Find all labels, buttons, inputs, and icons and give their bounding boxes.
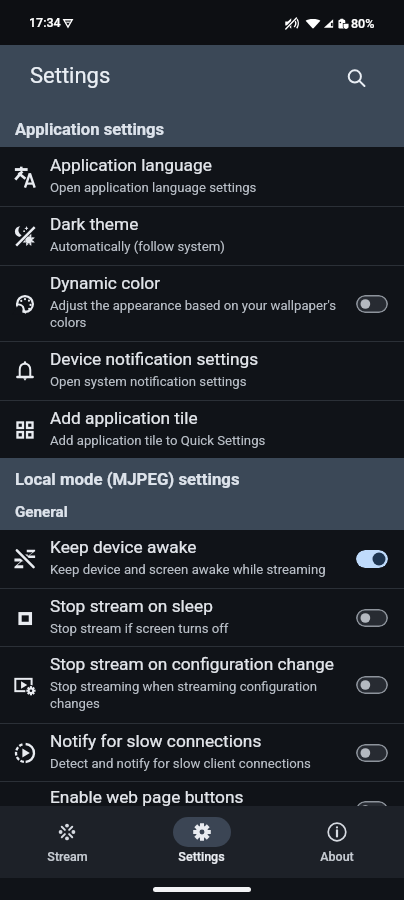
button[interactable]: Keep device awake [0,530,404,588]
staticText: Stop stream on sleep [50,596,213,616]
button[interactable]: Off [356,676,388,694]
staticText: 17:34 [29,15,61,30]
button[interactable]: Device notification settings [0,342,404,400]
button[interactable]: Stop stream on sleep [0,589,404,646]
staticText: Notify for slow connections [50,731,262,751]
staticText: 80% [351,16,375,31]
button[interactable]: Application language [0,147,404,206]
button[interactable]: Add application tile [0,401,404,458]
button[interactable]: Enable web page buttons [0,782,404,806]
button[interactable]: Off [356,801,388,806]
button[interactable]: Stop stream on configuration change [0,647,404,723]
staticText: Keep device awake [50,537,197,557]
staticText: Stream [47,849,88,864]
button[interactable]: Dynamic color [0,266,404,341]
staticText: Device notification settings [50,349,259,369]
button[interactable]: Dark theme [0,207,404,265]
staticText: Open application language settings [50,180,257,195]
staticText: Add application tile [50,408,198,428]
staticText: Enable web page buttons [50,787,244,806]
staticText: Application settings [15,120,165,139]
button[interactable]: Stream [0,806,134,878]
staticText: About [320,849,354,864]
staticText: Automatically (follow system) [50,239,225,254]
staticText: Detect and notify for slow client connec… [50,756,311,771]
button[interactable]: Search [340,62,372,94]
staticText: Settings [30,63,111,89]
button[interactable]: Off [356,744,388,762]
staticText: Add application tile to Quick Settings [50,433,266,448]
button[interactable]: About [269,806,404,878]
staticText: Application language [50,155,212,175]
staticText: Stop stream on configuration change [50,654,334,674]
staticText: Stop stream if screen turns off [50,621,229,636]
staticText: General [15,503,68,521]
staticText: Stop streaming when streaming configurat… [50,679,318,712]
staticText: Dynamic color [50,273,161,293]
staticText: Local mode (MJPEG) settings [15,469,240,489]
staticText: Keep device and screen awake while strea… [50,562,326,577]
staticText: Settings [178,849,225,864]
staticText: Adjust the appearance based on your wall… [50,298,337,331]
button[interactable]: Off [356,295,388,313]
button[interactable]: Settings [134,806,269,878]
staticText: Open system notification settings [50,374,247,389]
button[interactable]: Notify for slow connections [0,724,404,781]
button[interactable]: Off [356,609,388,627]
staticText: Dark theme [50,214,139,234]
button[interactable]: On [356,550,388,568]
